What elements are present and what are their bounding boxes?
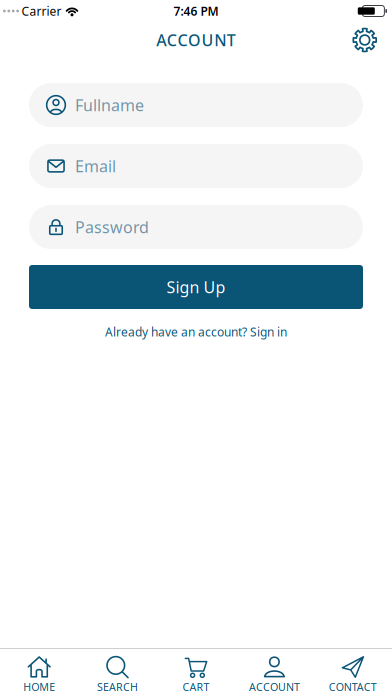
button[interactable]: Password — [29, 205, 363, 249]
staticText: Carrier — [21, 3, 61, 19]
button[interactable]: Email — [29, 144, 363, 188]
staticText: ACCOUNT — [249, 680, 300, 694]
button[interactable]: HOME — [0, 655, 78, 694]
button[interactable]: Already have an account? Sign in — [105, 324, 287, 340]
staticText: Email — [75, 155, 116, 177]
staticText: 7:46 PM — [173, 3, 218, 19]
staticText: ACCOUNT — [156, 29, 236, 51]
button[interactable]: Sign Up — [29, 265, 363, 309]
staticText: CONTACT — [329, 680, 377, 694]
staticText: Sign Up — [166, 276, 225, 298]
button[interactable]: CONTACT — [314, 655, 392, 694]
staticText: SEARCH — [97, 680, 138, 694]
staticText: CART — [182, 680, 209, 694]
button[interactable]: ACCOUNT — [235, 655, 314, 694]
staticText: Fullname — [75, 94, 144, 116]
button[interactable] — [351, 27, 378, 53]
staticText: HOME — [23, 680, 55, 694]
button[interactable]: Fullname — [29, 83, 363, 127]
staticText: Password — [75, 216, 149, 238]
staticText: Already have an account? Sign in — [105, 324, 287, 340]
button[interactable]: SEARCH — [78, 655, 157, 694]
button[interactable]: CART — [157, 655, 235, 694]
